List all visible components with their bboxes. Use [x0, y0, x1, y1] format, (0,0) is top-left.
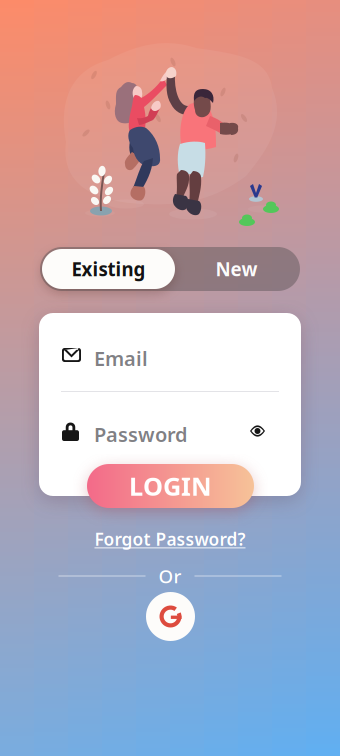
staticText: Existing	[71, 257, 145, 281]
staticText: New	[215, 257, 257, 281]
button[interactable]: Forgot Password?	[80, 528, 260, 550]
button[interactable]: Show password	[250, 426, 265, 436]
staticText: Forgot Password?	[94, 527, 245, 550]
staticText: Email	[94, 345, 148, 372]
staticText: Or	[158, 564, 181, 588]
staticText: LOGIN	[129, 469, 212, 503]
button[interactable]: Continue with Google	[146, 592, 195, 641]
button[interactable]: LOGIN	[87, 464, 254, 508]
button[interactable]: Existing	[42, 249, 175, 289]
staticText: Password	[94, 421, 188, 448]
button[interactable]: New	[175, 249, 298, 289]
